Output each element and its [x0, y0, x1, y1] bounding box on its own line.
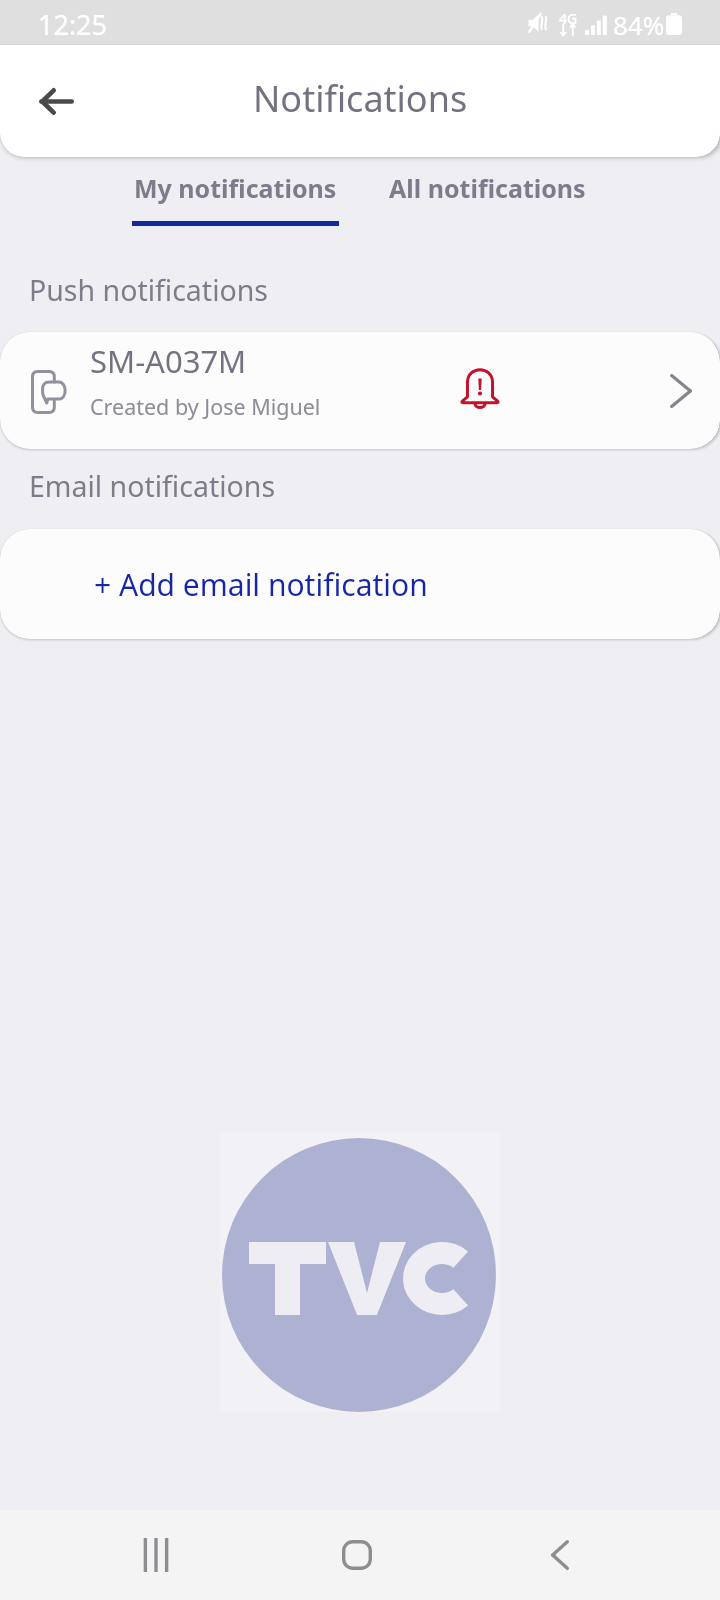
staticText: All notifications [389, 171, 586, 205]
button[interactable]: SM-A037M [0, 332, 720, 449]
staticText: Notifications [253, 74, 468, 123]
staticText: My notifications [134, 171, 337, 205]
staticText: 84% [613, 7, 665, 42]
staticText: 12:25 [38, 6, 108, 43]
staticText: Email notifications [29, 467, 276, 506]
staticText: Created by Jose Miguel [90, 392, 321, 421]
button[interactable]: My notifications [122, 157, 348, 226]
button[interactable]: Back [22, 67, 90, 135]
staticText: + Add email notification [94, 564, 428, 605]
button[interactable]: All notifications [377, 157, 597, 226]
staticText: SM-A037M [90, 340, 247, 382]
button[interactable]: Home [309, 1510, 405, 1600]
button[interactable]: + Add email notification [0, 529, 720, 639]
button[interactable]: Back [512, 1510, 608, 1600]
button[interactable]: Recent apps [108, 1510, 204, 1600]
staticText: Push notifications [29, 271, 269, 310]
staticText: 4G [559, 9, 578, 28]
